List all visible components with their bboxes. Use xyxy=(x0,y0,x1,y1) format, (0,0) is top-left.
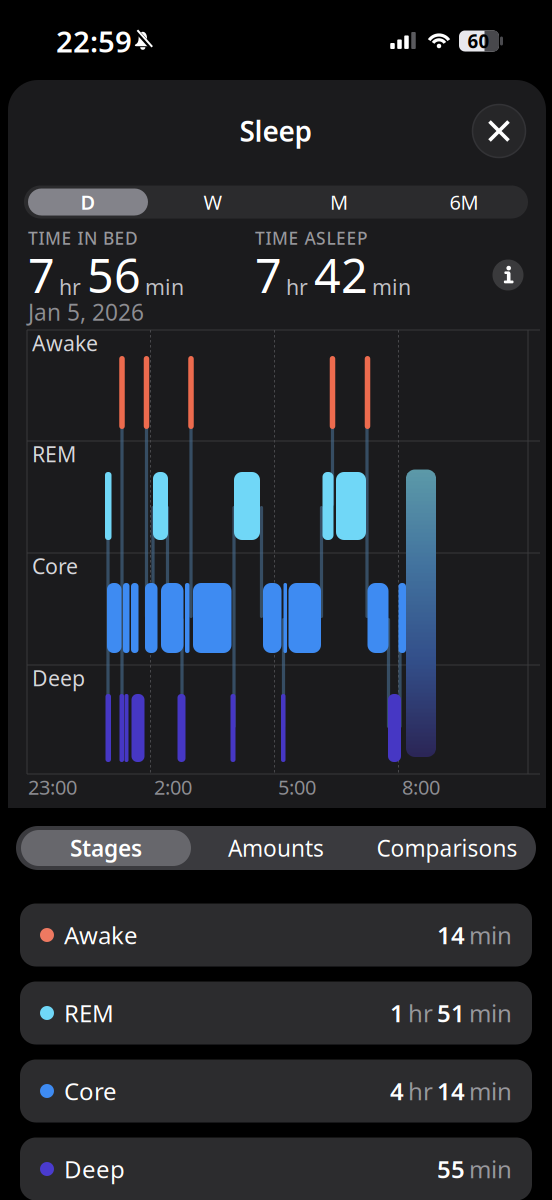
staticText: 7 xyxy=(255,244,282,306)
staticText: TIME IN BED xyxy=(28,226,138,249)
button[interactable]: W xyxy=(153,188,273,215)
staticText: W xyxy=(203,189,222,215)
staticText: 8:00 xyxy=(402,774,440,800)
staticText: Core xyxy=(64,1075,117,1107)
staticText: D xyxy=(80,189,95,215)
staticText: Sleep xyxy=(239,112,312,150)
staticText: Deep xyxy=(64,1153,125,1185)
staticText: Comparisons xyxy=(376,833,517,863)
button[interactable]: D xyxy=(28,188,148,215)
button[interactable]: Amounts xyxy=(196,830,356,866)
staticText: Awake xyxy=(32,329,98,357)
staticText: TIME ASLEEP xyxy=(255,226,368,249)
staticText: 23:00 xyxy=(28,774,77,800)
staticText: Core xyxy=(32,552,78,580)
staticText: REM xyxy=(32,440,76,468)
staticText: hr xyxy=(286,273,308,301)
staticText: Awake xyxy=(64,919,138,951)
staticText: 6M xyxy=(449,189,478,215)
staticText: 2:00 xyxy=(154,774,192,800)
button[interactable]: Deep xyxy=(20,1137,532,1200)
staticText: 14 xyxy=(437,1075,465,1107)
staticText: min xyxy=(469,997,512,1029)
staticText: 5:00 xyxy=(278,774,316,800)
staticText: min xyxy=(469,1153,512,1185)
staticText: 51 xyxy=(437,997,465,1029)
staticText: 60 xyxy=(467,29,489,53)
button[interactable]: Close xyxy=(472,104,525,157)
staticText: 56 xyxy=(87,244,141,306)
button[interactable]: 6M xyxy=(404,188,524,215)
staticText: 55 xyxy=(437,1153,465,1185)
staticText: 22:59 xyxy=(56,21,132,60)
button[interactable]: Stages xyxy=(21,830,191,866)
staticText: 14 xyxy=(437,919,465,951)
staticText: M xyxy=(330,189,348,215)
staticText: REM xyxy=(64,997,114,1029)
button[interactable]: M xyxy=(279,188,399,215)
button[interactable]: REM xyxy=(20,981,532,1044)
staticText: min xyxy=(469,919,512,951)
staticText: Deep xyxy=(32,664,85,692)
button[interactable]: Info xyxy=(492,259,523,290)
staticText: 7 xyxy=(28,244,55,306)
staticText: hr xyxy=(408,997,433,1029)
staticText: Jan 5, 2026 xyxy=(28,297,144,327)
staticText: 1 xyxy=(390,997,404,1029)
staticText: min xyxy=(469,1075,512,1107)
staticText: Amounts xyxy=(228,833,324,863)
staticText: Stages xyxy=(70,833,142,863)
staticText: 4 xyxy=(390,1075,404,1107)
staticText: hr xyxy=(59,273,81,301)
staticText: hr xyxy=(408,1075,433,1107)
button[interactable]: Core xyxy=(20,1059,532,1122)
button[interactable]: Comparisons xyxy=(362,830,532,866)
staticText: 42 xyxy=(314,244,368,306)
staticText: min xyxy=(145,273,184,301)
button[interactable]: Awake xyxy=(20,903,532,966)
staticText: min xyxy=(372,273,411,301)
